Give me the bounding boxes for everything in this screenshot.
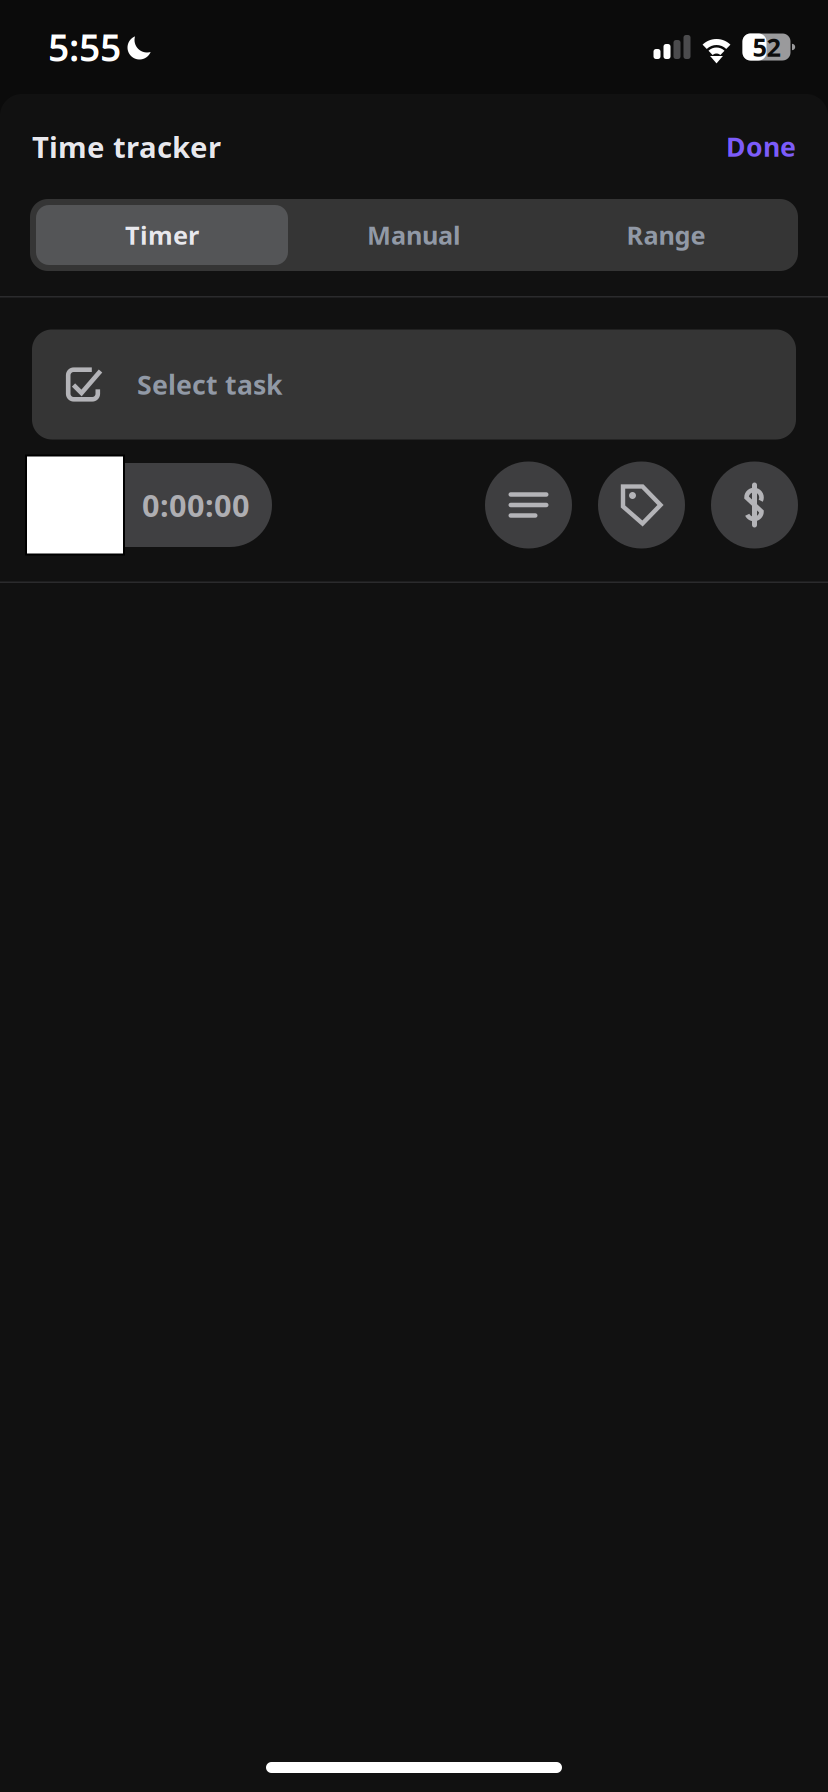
button[interactable]: Start timer [25, 454, 125, 555]
staticText: Manual [367, 218, 461, 252]
staticText: 5:55 [48, 22, 121, 72]
button[interactable]: Done [726, 129, 796, 164]
button[interactable]: Tags [598, 461, 685, 548]
button[interactable]: Manual [288, 205, 540, 265]
button[interactable]: Notes [485, 461, 572, 548]
staticText: Range [626, 218, 705, 252]
button[interactable]: Timer [36, 205, 288, 265]
staticText: 52 [752, 30, 780, 64]
staticText: Done [726, 129, 796, 164]
staticText: 0:00:00 [142, 485, 250, 525]
button[interactable]: Billable [711, 461, 798, 548]
staticText: Time tracker [32, 127, 221, 166]
button[interactable]: Select task [32, 329, 796, 439]
button[interactable]: Range [540, 205, 792, 265]
staticText: Select task [137, 367, 283, 402]
staticText: Timer [125, 218, 199, 252]
